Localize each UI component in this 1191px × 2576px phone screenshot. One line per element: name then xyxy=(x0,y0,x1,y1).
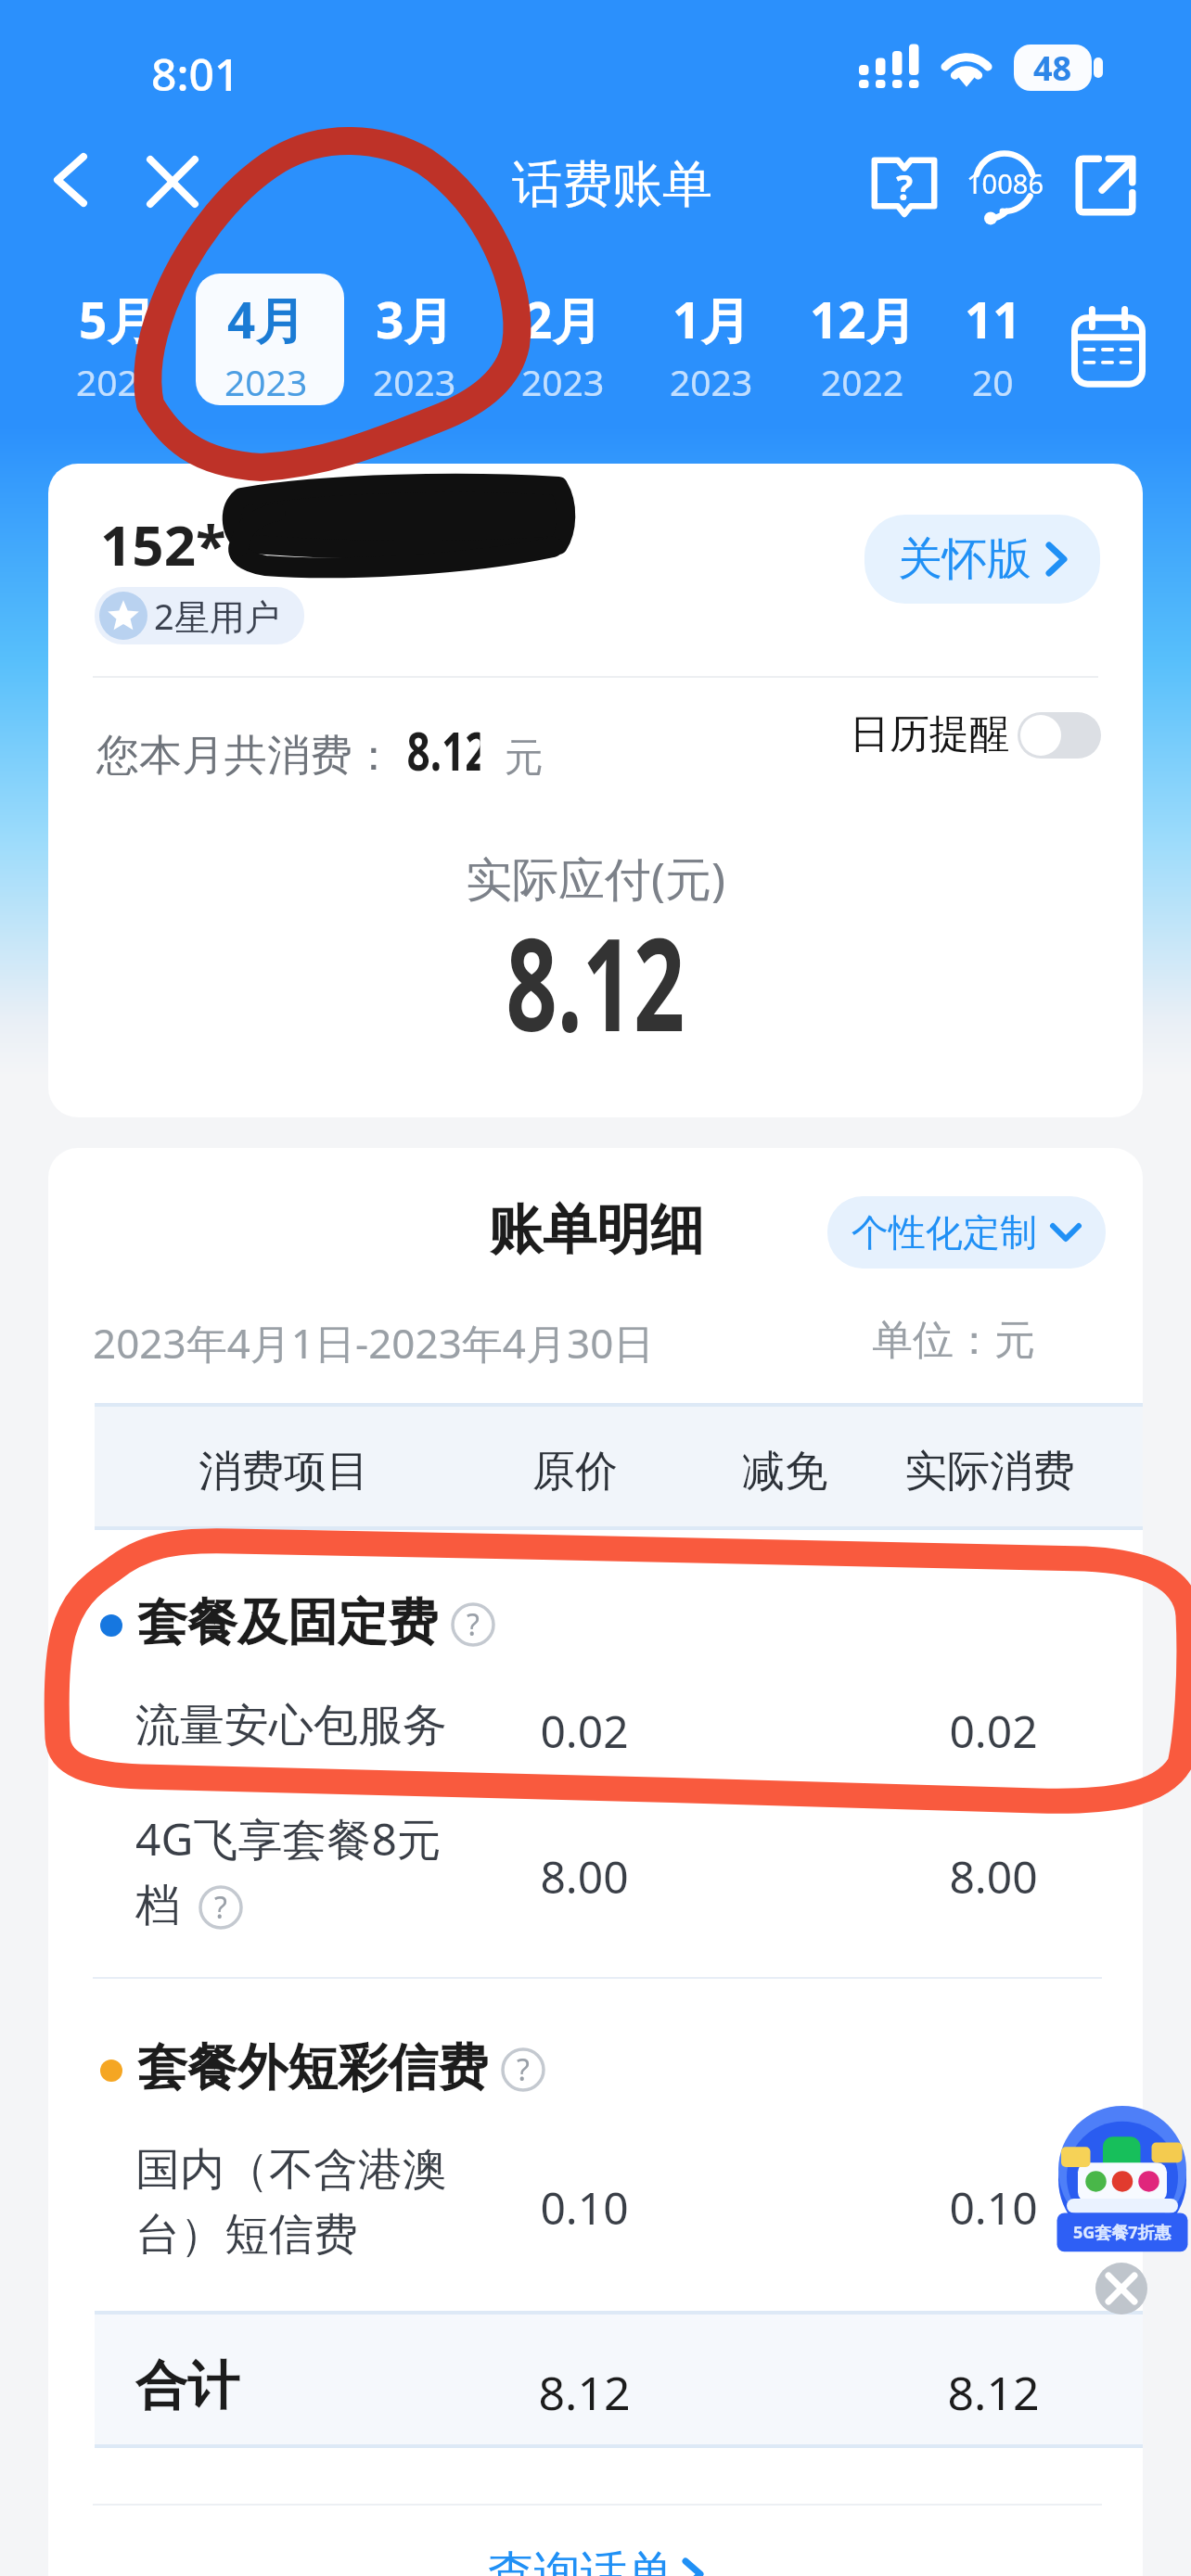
staticText: 4G飞享套餐8元 xyxy=(135,1808,442,1869)
staticText: ? xyxy=(467,1604,480,1645)
staticText: 0.10 xyxy=(540,2177,629,2238)
staticText: 套餐及固定费 xyxy=(137,1591,438,1654)
button[interactable]: Close xyxy=(130,139,215,224)
staticText: 关怀版 xyxy=(898,531,1031,587)
staticText: 元 xyxy=(505,733,544,783)
staticText: 8.12 xyxy=(407,713,480,786)
staticText: 国内（不含港澳 xyxy=(135,2142,447,2198)
staticText: 2022 xyxy=(821,357,904,406)
button[interactable]: 2月 xyxy=(489,274,637,408)
button[interactable]: Back xyxy=(30,139,111,221)
staticText: ? xyxy=(517,2049,530,2090)
staticText: 8.12 xyxy=(506,894,685,1068)
staticText: 152**** xyxy=(100,506,317,582)
button[interactable]: 5G package promotion xyxy=(1053,2112,1191,2256)
button[interactable]: 关怀版 xyxy=(898,531,1067,587)
staticText: 个性化定制 xyxy=(852,1209,1037,1256)
button[interactable]: Calendar reminder xyxy=(1018,712,1101,759)
button[interactable]: 3月 xyxy=(340,274,489,408)
staticText: 日历提醒 xyxy=(850,709,1009,759)
button[interactable]: 个性化定制 xyxy=(852,1209,1082,1256)
staticText: 您本月共消费： xyxy=(96,729,395,783)
staticText: 0.02 xyxy=(540,1701,629,1761)
staticText: 8.12 xyxy=(538,2361,631,2424)
staticText: 2星用户 xyxy=(154,592,280,640)
staticText: 2023 xyxy=(373,357,456,406)
button[interactable]: 12月 xyxy=(788,274,937,408)
button[interactable]: Close advertisement xyxy=(1095,2263,1147,2315)
staticText: 2023年4月1日-2023年4月30日 xyxy=(93,1315,655,1371)
staticText: 流量安心包服务 xyxy=(135,1698,447,1753)
staticText: 0.10 xyxy=(949,2177,1038,2238)
button[interactable] xyxy=(196,274,344,405)
button[interactable]: 查询话单 xyxy=(48,2544,1143,2576)
staticText: 2023 xyxy=(670,357,753,406)
staticText: 4月 xyxy=(227,286,305,352)
staticText: 查询话单 xyxy=(488,2544,673,2576)
staticText: 档 xyxy=(135,1878,180,1933)
staticText: 合计 xyxy=(135,2353,239,2419)
staticText: 11 xyxy=(965,286,1021,352)
button[interactable]: 1月 xyxy=(637,274,786,408)
staticText: ? xyxy=(214,1887,227,1928)
staticText: 消费项目 xyxy=(198,1445,369,1498)
staticText: 减免 xyxy=(742,1445,827,1498)
staticText: 8.00 xyxy=(949,1846,1038,1906)
button[interactable]: Help xyxy=(860,141,949,230)
staticText: 12月 xyxy=(810,286,916,352)
button[interactable]: Call 10086 hotline xyxy=(960,141,1049,230)
staticText: 套餐外短彩信费 xyxy=(137,2036,488,2099)
staticText: 20 xyxy=(972,357,1014,406)
staticText: 1月 xyxy=(672,286,750,352)
staticText: 2023 xyxy=(521,357,605,406)
button[interactable]: Share xyxy=(1061,141,1150,230)
button[interactable]: 11 xyxy=(918,274,1067,408)
staticText: 5G套餐7折惠 xyxy=(1073,2221,1172,2244)
staticText: 实际应付(元) xyxy=(466,847,725,910)
staticText: 2月 xyxy=(524,286,602,352)
staticText: 10086 xyxy=(967,165,1044,201)
button[interactable]: Pick month xyxy=(1064,301,1153,390)
staticText: 账单明细 xyxy=(489,1196,704,1264)
button[interactable]: 4月 xyxy=(192,274,340,408)
button[interactable]: 5月 xyxy=(44,274,192,408)
staticText: 5月 xyxy=(79,286,157,352)
staticText: 单位：元 xyxy=(872,1315,1035,1366)
staticText: ? xyxy=(896,162,914,210)
staticText: 8.12 xyxy=(947,2361,1040,2424)
staticText: 8:01 xyxy=(151,44,240,104)
staticText: 台）短信费 xyxy=(135,2207,358,2263)
staticText: 2023 xyxy=(224,357,308,406)
staticText: 48 xyxy=(1033,45,1072,91)
staticText: 8.00 xyxy=(540,1846,629,1906)
staticText: 话费账单 xyxy=(512,153,712,216)
staticText: 0.02 xyxy=(949,1701,1038,1761)
button[interactable]: 2星用户 xyxy=(99,592,280,640)
staticText: 实际消费 xyxy=(904,1445,1075,1498)
staticText: 2023 xyxy=(76,357,160,406)
staticText: 3月 xyxy=(376,286,454,352)
staticText: 原价 xyxy=(532,1445,618,1498)
